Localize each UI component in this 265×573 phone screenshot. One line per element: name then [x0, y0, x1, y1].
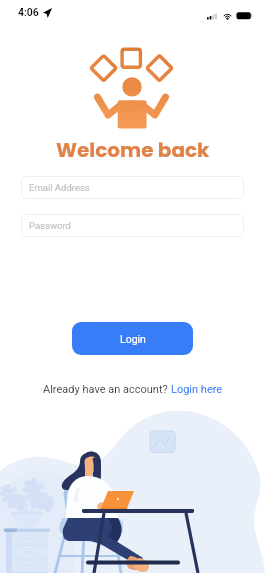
staticText: Login here	[171, 383, 223, 396]
button[interactable]: Email Address	[21, 176, 244, 199]
button[interactable]: Login here	[171, 383, 223, 396]
staticText: Password	[29, 220, 71, 231]
staticText: 4:06	[18, 6, 39, 18]
staticText: Welcome back	[56, 136, 210, 164]
staticText: Already have an account?	[43, 383, 171, 396]
button[interactable]: Login	[72, 322, 193, 355]
staticText: Login	[120, 333, 146, 345]
button[interactable]: Password	[21, 214, 244, 237]
staticText: Email Address	[29, 182, 90, 193]
